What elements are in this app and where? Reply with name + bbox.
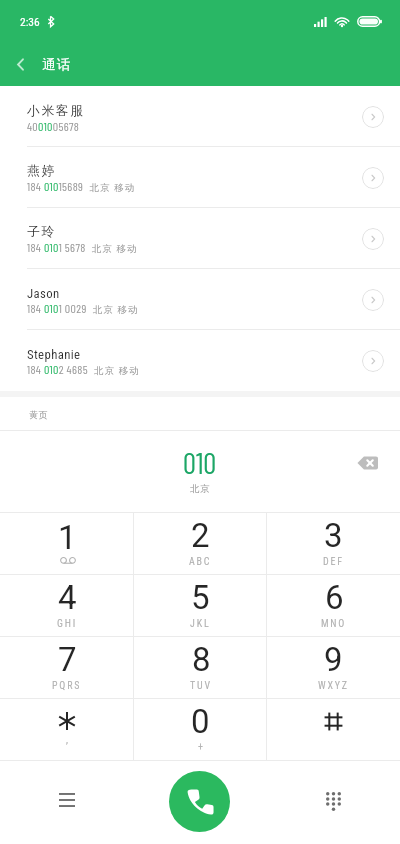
button[interactable]: 8	[134, 637, 267, 698]
button[interactable]: Call details	[362, 228, 384, 250]
button[interactable]: Call	[169, 771, 230, 832]
staticText: 燕婷	[27, 163, 56, 179]
button[interactable]: Call details	[362, 106, 384, 128]
staticText: 子玲	[27, 224, 56, 240]
staticText: 9	[324, 640, 343, 679]
button[interactable]: ,	[0, 699, 134, 760]
staticText: 北京	[190, 483, 211, 495]
staticText: MNO	[321, 618, 347, 630]
staticText: 5	[191, 578, 210, 617]
staticText: TUV	[190, 680, 212, 692]
staticText: JKL	[190, 618, 211, 630]
staticText: 2	[191, 516, 210, 555]
button[interactable]	[267, 699, 400, 760]
button[interactable]: Backspace	[357, 455, 378, 471]
staticText: 0	[191, 702, 210, 741]
staticText: 184 0101 5678 北京 移动	[27, 240, 138, 255]
staticText: 6	[325, 578, 344, 617]
staticText: 3	[324, 516, 343, 555]
staticText: ,	[66, 734, 68, 746]
button[interactable]: Stephanie	[0, 330, 400, 391]
button[interactable]: Back	[0, 42, 88, 86]
button[interactable]: 1	[0, 513, 134, 574]
button[interactable]: Call details	[362, 350, 384, 372]
button[interactable]: Call details	[362, 289, 384, 311]
staticText: GHI	[57, 618, 78, 630]
button[interactable]: 3	[267, 513, 400, 574]
staticText: 184 0101 0029 北京 移动	[27, 301, 139, 316]
button[interactable]: 9	[267, 637, 400, 698]
staticText: 2:36	[20, 15, 40, 28]
button[interactable]: Call details	[362, 167, 384, 189]
staticText: PQRS	[52, 680, 82, 692]
button[interactable]: 小米客服	[0, 86, 400, 147]
staticText: 1	[58, 518, 77, 557]
button[interactable]: Dialpad	[267, 761, 400, 844]
button[interactable]: 黄页	[0, 397, 400, 431]
staticText: +	[198, 741, 203, 753]
button[interactable]: 2	[134, 513, 267, 574]
button[interactable]: 7	[0, 637, 134, 698]
staticText: 7	[58, 640, 77, 679]
button[interactable]: 0	[134, 699, 267, 760]
staticText: WXYZ	[318, 680, 349, 692]
staticText: 黄页	[29, 409, 49, 420]
button[interactable]: 燕婷	[0, 147, 400, 208]
staticText: 184 01015689 北京 移动	[27, 179, 136, 194]
button[interactable]: 4	[0, 575, 134, 636]
staticText: 8	[192, 640, 211, 679]
staticText: ABC	[189, 556, 212, 568]
other: Back	[17, 58, 24, 71]
button[interactable]: 5	[134, 575, 267, 636]
staticText: 4	[58, 578, 77, 617]
button[interactable]: 子玲	[0, 208, 400, 269]
staticText: Jason	[27, 286, 60, 301]
staticText: 184 0102 4685 北京 移动	[27, 362, 140, 377]
button[interactable]: Jason	[0, 269, 400, 330]
button[interactable]: 6	[267, 575, 400, 636]
staticText: 小米客服	[27, 103, 85, 119]
staticText: 通话	[42, 56, 72, 73]
staticText: Stephanie	[27, 347, 81, 362]
staticText: 010	[183, 445, 217, 480]
button[interactable]: Menu	[0, 761, 134, 844]
staticText: DEF	[323, 556, 344, 568]
staticText: 4001005678	[27, 119, 80, 133]
